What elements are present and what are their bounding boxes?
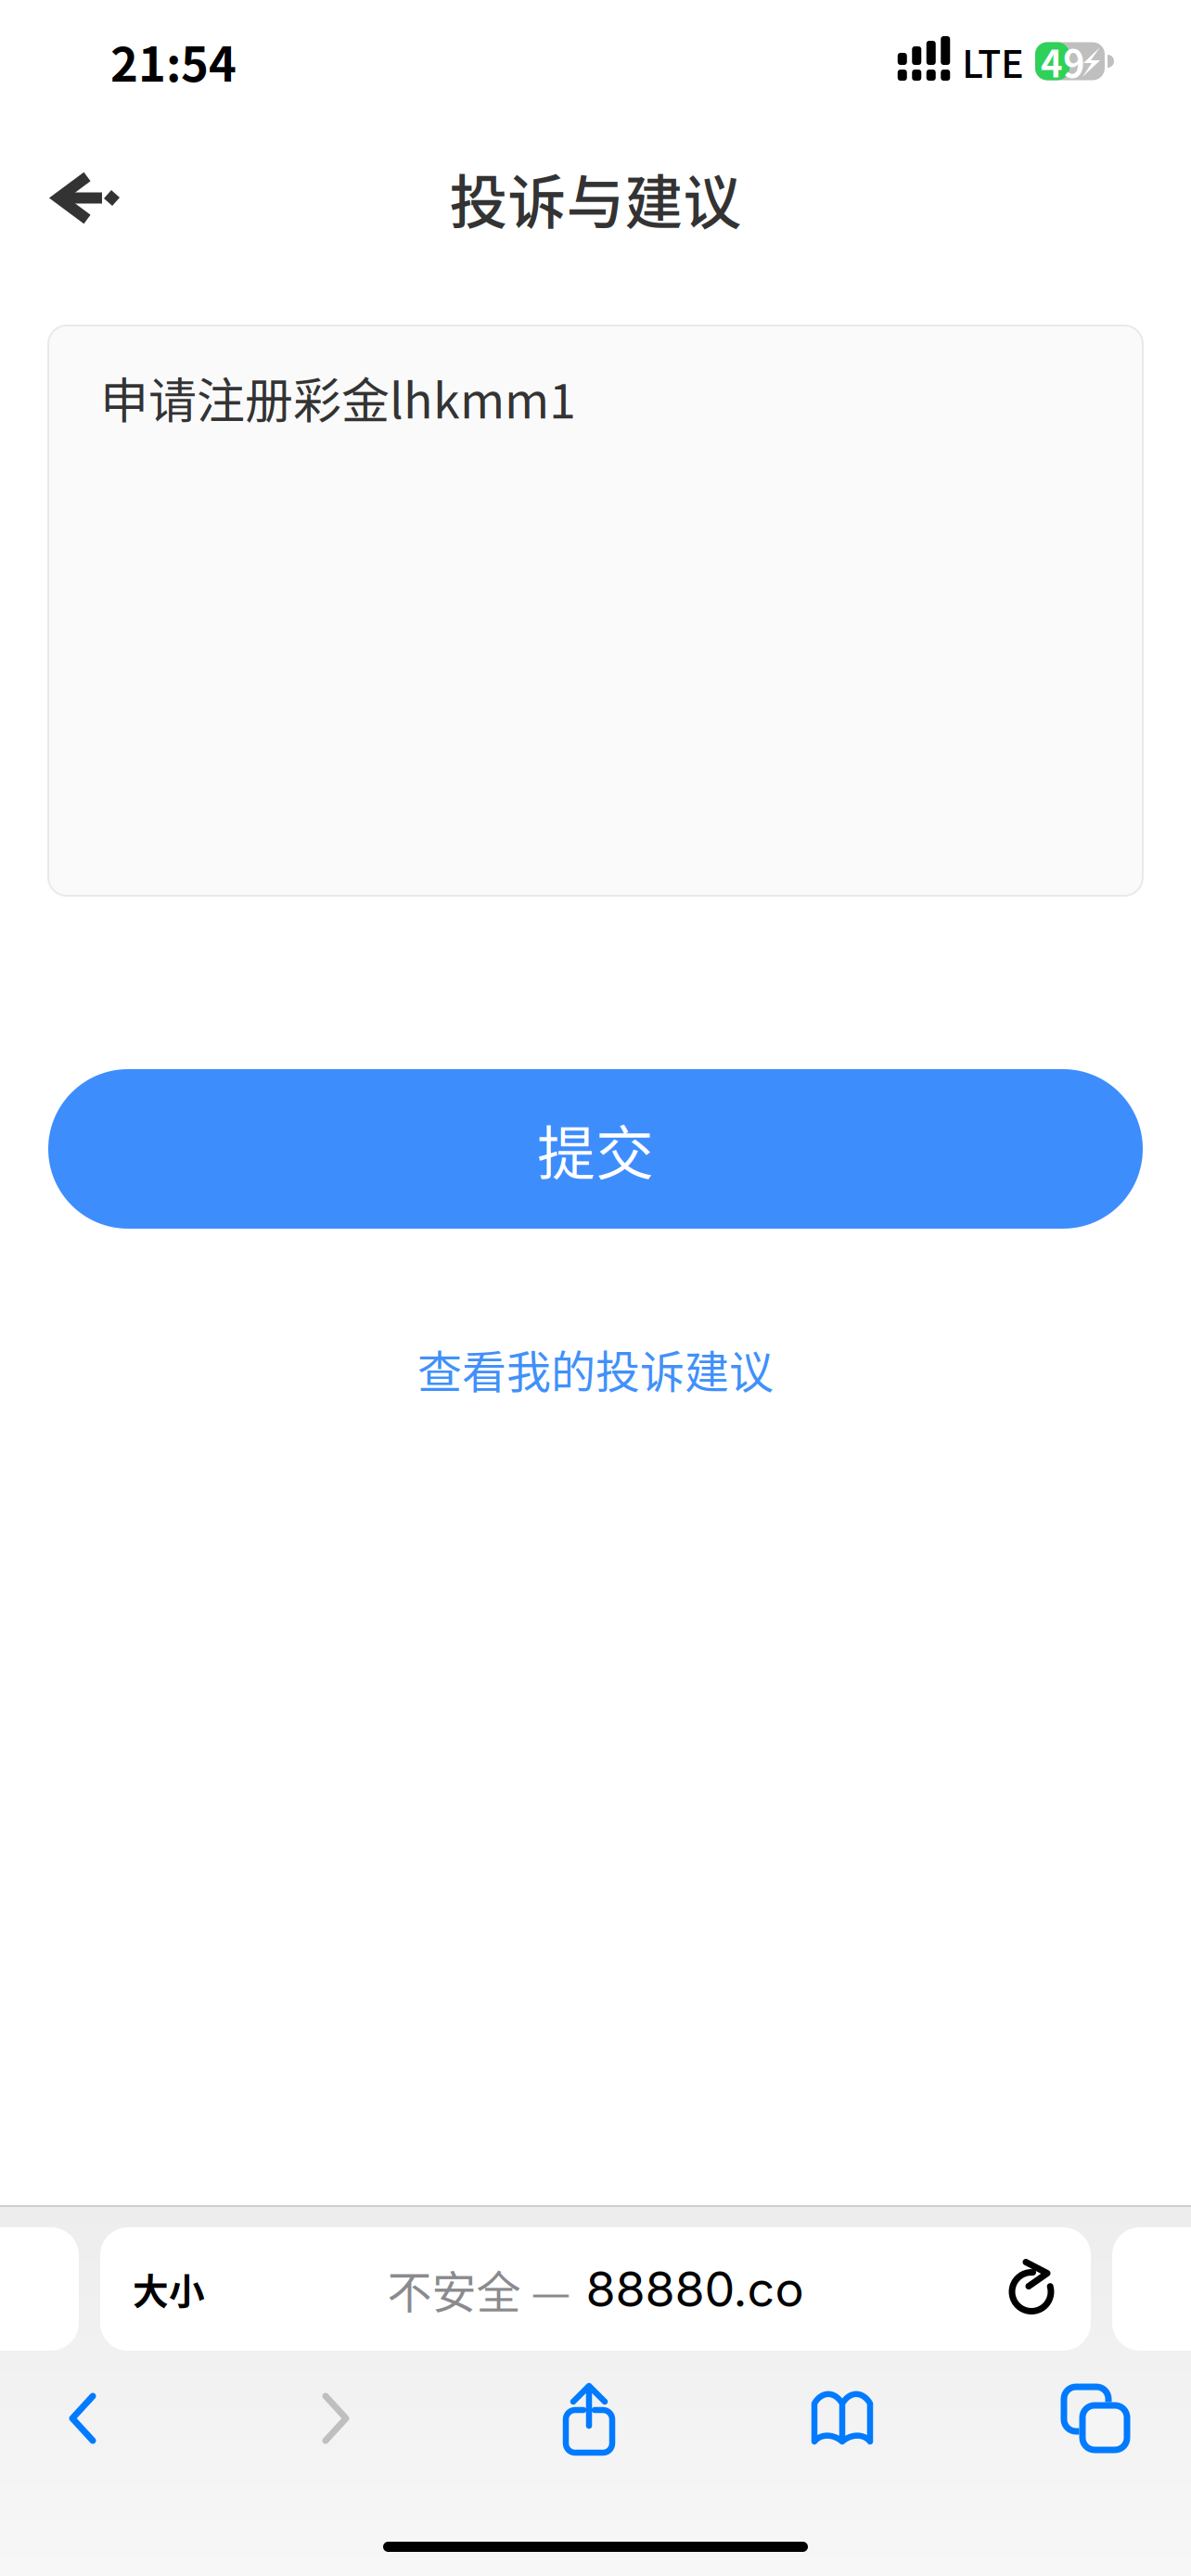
staticText: 提交 <box>537 1107 654 1191</box>
button[interactable]: 提交 <box>48 1069 1143 1229</box>
button[interactable]: 分享 <box>512 2363 666 2474</box>
button[interactable]: 查看我的投诉建议 <box>48 1313 1143 1424</box>
button[interactable]: 书签 <box>765 2363 919 2474</box>
staticText: 大小 <box>133 2263 205 2315</box>
staticText: 不安全 — <box>387 2257 571 2321</box>
button[interactable]: 前进 <box>259 2363 413 2474</box>
button[interactable]: 刷新 <box>978 2227 1091 2351</box>
staticText: 21:54 <box>110 27 237 95</box>
staticText: 88880.co <box>586 2260 804 2318</box>
staticText: LTE <box>962 33 1024 89</box>
staticText: 申请注册彩金lhkmm1 <box>100 363 576 432</box>
staticText: 查看我的投诉建议 <box>417 1336 774 1401</box>
button[interactable]: 申请注册彩金lhkmm1 <box>48 325 1143 896</box>
staticText: 投诉与建议 <box>449 156 742 240</box>
button[interactable]: 标签页 <box>1018 2363 1172 2474</box>
button[interactable]: 后退 <box>6 2363 160 2474</box>
button[interactable]: 大小 <box>100 2227 237 2351</box>
button[interactable]: 返回 <box>0 133 170 263</box>
staticText: 49 <box>1041 34 1085 88</box>
